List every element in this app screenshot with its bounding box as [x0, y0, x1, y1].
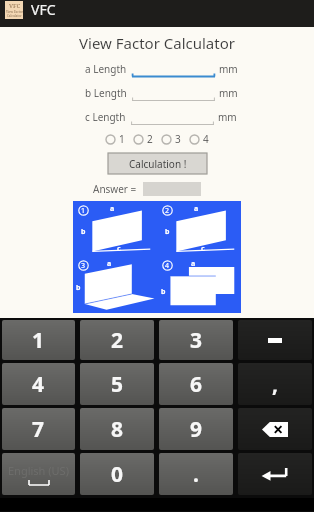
staticText: a — [194, 204, 199, 214]
button[interactable]: Space, English (US) — [2, 453, 75, 495]
button[interactable]: Configuration diagram — [73, 201, 241, 313]
button[interactable]: 8 — [80, 408, 154, 450]
staticText: a Length — [85, 62, 127, 76]
staticText: a — [110, 204, 115, 214]
staticText: b — [165, 227, 170, 237]
staticText: View Factor Calculator — [0, 33, 314, 53]
staticText: 1 — [119, 132, 125, 146]
staticText: b — [161, 287, 166, 297]
staticText: b — [76, 283, 81, 293]
staticText: , — [272, 370, 278, 399]
staticText: c — [201, 244, 205, 254]
staticText: mm — [219, 86, 238, 100]
staticText: 2 — [111, 326, 124, 355]
staticText: mm — [218, 110, 237, 124]
staticText: 7 — [32, 415, 45, 444]
staticText: c — [117, 244, 121, 254]
button[interactable]: 9 — [159, 408, 233, 450]
staticText: 6 — [190, 370, 203, 399]
button[interactable] — [131, 108, 214, 126]
staticText: 3 — [175, 132, 181, 146]
button[interactable]: 6 — [159, 363, 233, 405]
button[interactable]: 1 — [2, 320, 75, 360]
staticText: 3 — [81, 261, 86, 271]
staticText: mm — [219, 62, 238, 76]
staticText: 2 — [165, 206, 170, 216]
button[interactable]: 2 — [80, 320, 154, 360]
button[interactable]: Minus — [238, 320, 312, 360]
button[interactable]: 4 — [189, 132, 209, 146]
button[interactable]: 3 — [159, 320, 233, 360]
button[interactable]: 7 — [2, 408, 75, 450]
button[interactable] — [132, 60, 215, 78]
staticText: 3 — [190, 326, 203, 355]
staticText: 1 — [32, 326, 45, 355]
staticText: 4 — [203, 132, 209, 146]
staticText: . — [193, 460, 199, 489]
button[interactable]: Calculation ! — [108, 153, 207, 174]
staticText: VFC — [9, 2, 21, 10]
staticText: b Length — [85, 86, 127, 100]
staticText: a — [107, 259, 112, 269]
button[interactable]: 4 — [2, 363, 75, 405]
staticText: Calculator — [7, 14, 22, 18]
staticText: VFC — [31, 0, 56, 19]
button[interactable]: . — [159, 453, 233, 495]
button[interactable]: 5 — [80, 363, 154, 405]
button[interactable]: Backspace — [238, 408, 312, 450]
staticText: b — [81, 227, 86, 237]
staticText: 1 — [81, 206, 86, 216]
button[interactable] — [132, 84, 215, 102]
staticText: 4 — [32, 370, 45, 399]
staticText: Calculation ! — [129, 157, 187, 171]
staticText: View Factor — [6, 10, 23, 14]
staticText: 2 — [147, 132, 153, 146]
button[interactable]: Enter — [238, 453, 312, 495]
staticText: 0 — [111, 460, 124, 489]
staticText: a — [191, 259, 196, 269]
staticText: 4 — [165, 261, 170, 271]
staticText: Answer = — [93, 182, 137, 196]
staticText: 5 — [111, 370, 124, 399]
button[interactable]: 2 — [133, 132, 153, 146]
staticText: English (US) — [8, 463, 69, 478]
button[interactable]: 3 — [161, 132, 181, 146]
button[interactable]: 1 — [105, 132, 125, 146]
staticText: 8 — [111, 415, 124, 444]
staticText: c Length — [85, 110, 126, 124]
staticText: 9 — [190, 415, 203, 444]
button[interactable]: 0 — [80, 453, 154, 495]
button[interactable]: Comma — [238, 363, 312, 405]
button[interactable]: App icon — [5, 1, 23, 19]
